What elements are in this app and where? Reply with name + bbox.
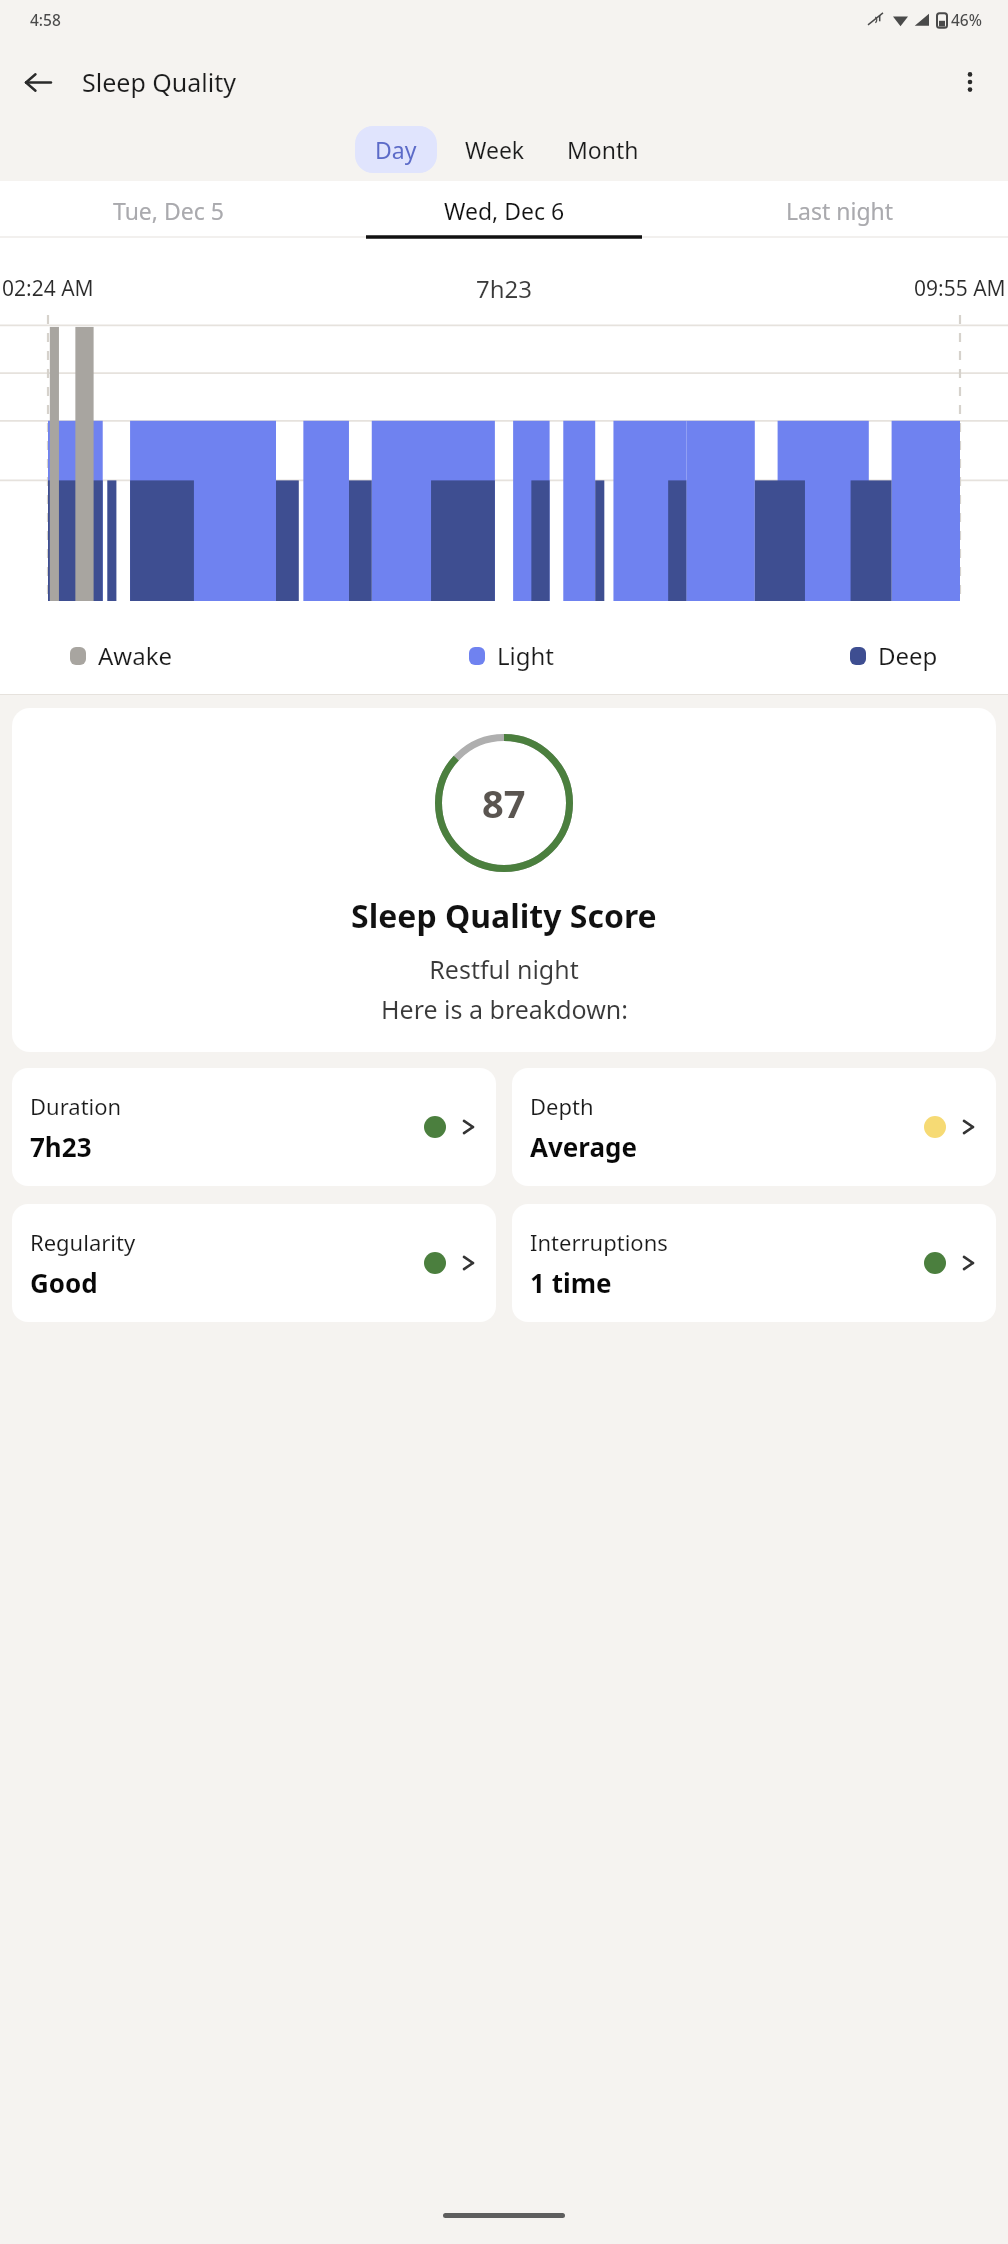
button[interactable]: Last night bbox=[672, 181, 1008, 239]
staticText: Deep bbox=[878, 639, 938, 672]
staticText: Last night bbox=[786, 195, 894, 226]
staticText: 1 time bbox=[530, 1265, 612, 1300]
staticText: 7h23 bbox=[476, 272, 533, 305]
staticText: Regularity bbox=[30, 1227, 136, 1257]
staticText: 4:58 bbox=[30, 9, 61, 30]
staticText: Sleep Quality Score bbox=[351, 894, 657, 938]
button[interactable]: More options bbox=[946, 58, 994, 106]
button[interactable]: Wed, Dec 6 bbox=[336, 181, 672, 239]
button[interactable]: Regularity bbox=[12, 1204, 496, 1322]
button[interactable]: Duration bbox=[12, 1068, 496, 1186]
staticText: Light bbox=[497, 639, 555, 672]
staticText: Average bbox=[530, 1129, 637, 1164]
staticText: Depth bbox=[530, 1091, 594, 1121]
staticText: Good bbox=[30, 1265, 98, 1300]
staticText: Wed, Dec 6 bbox=[444, 195, 565, 226]
button[interactable]: Interruptions bbox=[512, 1204, 996, 1322]
staticText: 09:55 AM bbox=[914, 274, 1006, 303]
staticText: Restful night bbox=[429, 952, 579, 986]
staticText: Sleep Quality bbox=[82, 65, 236, 99]
staticText: Interruptions bbox=[530, 1227, 668, 1257]
staticText: 02:24 AM bbox=[2, 274, 94, 303]
staticText: Duration bbox=[30, 1091, 122, 1121]
staticText: 87 bbox=[482, 777, 526, 829]
staticText: Month bbox=[567, 134, 639, 165]
button[interactable]: 87 bbox=[12, 708, 996, 1052]
button[interactable]: Back bbox=[14, 58, 62, 106]
staticText: 46% bbox=[951, 9, 982, 30]
staticText: Here is a breakdown: bbox=[381, 992, 628, 1026]
button[interactable]: Tue, Dec 5 bbox=[0, 181, 336, 239]
staticText: Day bbox=[375, 134, 417, 165]
button[interactable]: Week bbox=[451, 126, 539, 173]
button[interactable]: Depth bbox=[512, 1068, 996, 1186]
staticText: Awake bbox=[98, 639, 173, 672]
staticText: Tue, Dec 5 bbox=[113, 195, 224, 226]
button[interactable]: Day bbox=[355, 126, 437, 173]
button[interactable]: Month bbox=[553, 126, 653, 173]
staticText: 7h23 bbox=[30, 1129, 92, 1164]
staticText: Week bbox=[465, 134, 525, 165]
